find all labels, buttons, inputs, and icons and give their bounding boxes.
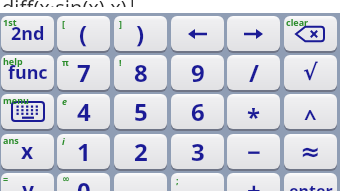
staticText: 1 <box>77 135 91 168</box>
staticText: ) <box>136 17 145 50</box>
staticText: ∞ <box>62 174 70 184</box>
staticText: 3 <box>191 135 205 168</box>
staticText: enter <box>289 180 333 191</box>
button[interactable]: y <box>1 173 54 191</box>
staticText: * <box>247 100 261 129</box>
staticText: 0 <box>77 174 91 191</box>
button[interactable]: 4 <box>57 94 110 131</box>
staticText: , <box>194 174 201 191</box>
staticText: − <box>247 135 261 168</box>
button[interactable]: , <box>171 173 224 191</box>
button[interactable]: 7 <box>57 55 110 92</box>
button[interactable] <box>171 16 224 53</box>
staticText: menu <box>3 94 29 106</box>
button[interactable]: 1 <box>57 134 110 171</box>
staticText: diff(x·sin(x),x)| <box>2 0 138 7</box>
staticText: func <box>8 60 48 85</box>
button[interactable]: 5 <box>114 94 167 131</box>
button[interactable]: ( <box>57 16 110 53</box>
staticText: 2nd <box>11 21 45 46</box>
staticText: i <box>62 135 65 147</box>
staticText: 8 <box>134 56 148 89</box>
staticText: 2 <box>134 135 148 168</box>
button[interactable] <box>227 16 280 53</box>
button[interactable]: menu <box>1 94 54 131</box>
staticText: ^ <box>304 101 317 129</box>
button[interactable]: ^ <box>284 94 337 131</box>
staticText: y <box>22 176 34 191</box>
button[interactable]: ) <box>114 16 167 53</box>
staticText: x <box>21 137 34 166</box>
button[interactable]: 3 <box>171 134 224 171</box>
staticText: + <box>247 174 261 191</box>
staticText: . <box>137 174 144 191</box>
staticText: ≈ <box>300 138 321 166</box>
button[interactable]: enter <box>284 173 337 191</box>
button[interactable]: + <box>227 173 280 191</box>
staticText: ! <box>119 56 122 68</box>
staticText: 1st <box>3 16 17 28</box>
staticText: help <box>3 55 23 67</box>
button[interactable]: ≈ <box>284 134 337 171</box>
staticText: 9 <box>191 56 205 89</box>
staticText: 7 <box>77 56 91 89</box>
staticText: √ <box>303 60 318 86</box>
button[interactable]: / <box>227 55 280 92</box>
staticText: ans <box>3 134 19 146</box>
staticText: ; <box>176 174 179 186</box>
staticText: 5 <box>134 95 148 128</box>
button[interactable]: func <box>1 55 54 92</box>
button[interactable]: . <box>114 173 167 191</box>
button[interactable]: 8 <box>114 55 167 92</box>
staticText: / <box>249 56 259 89</box>
staticText: 4 <box>77 95 91 128</box>
button[interactable]: * <box>227 94 280 131</box>
staticText: e <box>62 95 68 107</box>
button[interactable]: 2 <box>114 134 167 171</box>
button[interactable]: clear <box>284 16 337 53</box>
button[interactable]: − <box>227 134 280 171</box>
staticText: [ <box>62 17 65 29</box>
button[interactable]: 0 <box>57 173 110 191</box>
staticText: clear <box>286 16 309 28</box>
staticText: ] <box>119 17 122 29</box>
button[interactable]: 9 <box>171 55 224 92</box>
staticText: 6 <box>191 95 205 128</box>
button[interactable]: √ <box>284 55 337 92</box>
staticText: ( <box>79 17 88 50</box>
button[interactable]: 6 <box>171 94 224 131</box>
staticText: π <box>62 56 69 68</box>
button[interactable]: x <box>1 134 54 171</box>
staticText: = <box>3 173 9 185</box>
button[interactable]: 2nd <box>1 16 54 53</box>
